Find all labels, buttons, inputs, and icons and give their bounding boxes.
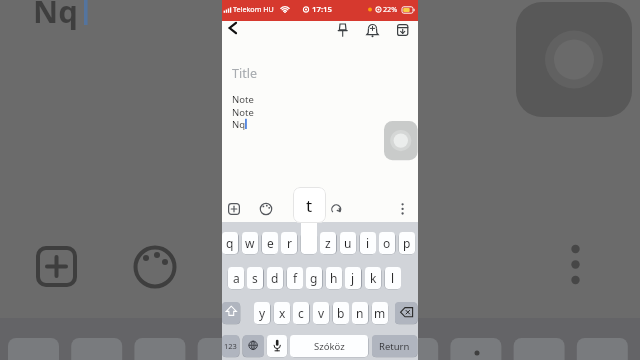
staticText: Return [379, 340, 410, 353]
button[interactable]: j [345, 267, 361, 289]
button[interactable] [364, 22, 381, 39]
button[interactable]: x [274, 302, 290, 324]
staticText: o [383, 235, 391, 251]
button[interactable]: k [365, 267, 381, 289]
button[interactable] [327, 200, 345, 218]
staticText: v [318, 305, 325, 321]
staticText: w [245, 235, 255, 251]
staticText: s [252, 270, 258, 286]
button[interactable]: y [254, 302, 270, 324]
staticText: x [279, 305, 286, 321]
button[interactable] [225, 200, 243, 218]
button[interactable] [267, 335, 287, 357]
button[interactable]: 123 [222, 335, 239, 357]
staticText: Note [232, 106, 254, 119]
staticText: Szóköz [314, 340, 345, 353]
button[interactable]: d [267, 267, 283, 289]
button[interactable] [394, 200, 411, 218]
staticText: a [233, 270, 240, 286]
staticText: e [267, 235, 274, 251]
staticText: c [298, 305, 304, 321]
button[interactable] [384, 121, 418, 160]
button[interactable]: w [242, 232, 258, 254]
button[interactable] [394, 22, 411, 39]
staticText: y [259, 305, 266, 321]
staticText: b [337, 305, 345, 321]
staticText: l [391, 270, 395, 286]
staticText: Title [232, 65, 257, 82]
button[interactable]: a [228, 267, 244, 289]
staticText: 123 [224, 341, 237, 351]
staticText: Nq [232, 118, 246, 131]
staticText: q [226, 235, 234, 251]
button[interactable]: Return [372, 335, 417, 357]
staticText: u [344, 235, 352, 251]
button[interactable] [225, 19, 243, 37]
staticText: i [366, 235, 370, 251]
staticText: m [374, 305, 386, 321]
button[interactable] [243, 335, 264, 357]
button[interactable]: h [326, 267, 342, 289]
button[interactable]: e [262, 232, 278, 254]
staticText: k [370, 270, 377, 286]
button[interactable] [334, 22, 351, 39]
staticText: t [306, 194, 313, 217]
button[interactable]: q [222, 232, 238, 254]
staticText: j [351, 270, 355, 286]
button[interactable]: i [360, 232, 376, 254]
button[interactable]: n [352, 302, 368, 324]
button[interactable]: f [287, 267, 303, 289]
button[interactable]: z [320, 232, 336, 254]
button[interactable]: u [340, 232, 356, 254]
staticText: r [287, 235, 292, 251]
button[interactable]: o [379, 232, 395, 254]
button[interactable]: c [293, 302, 309, 324]
button[interactable]: b [333, 302, 349, 324]
button[interactable]: r [281, 232, 297, 254]
button[interactable]: Szóköz [290, 335, 368, 357]
staticText: 17:15 [312, 4, 332, 15]
button[interactable] [222, 302, 240, 324]
staticText: g [310, 270, 318, 286]
staticText: Nq [33, 0, 78, 32]
button[interactable]: m [372, 302, 388, 324]
staticText: h [330, 270, 338, 286]
staticText: z [325, 235, 331, 251]
button[interactable]: s [247, 267, 263, 289]
staticText: f [293, 270, 298, 286]
button[interactable]: l [385, 267, 401, 289]
button[interactable] [395, 302, 417, 324]
staticText: d [271, 270, 279, 286]
staticText: p [403, 235, 411, 251]
button[interactable] [301, 232, 317, 254]
staticText: Telekom HU [233, 4, 274, 14]
button[interactable] [257, 200, 275, 218]
staticText: n [356, 305, 364, 321]
button[interactable]: v [313, 302, 329, 324]
button[interactable]: p [399, 232, 415, 254]
staticText: 22% [383, 4, 398, 14]
button[interactable]: g [306, 267, 322, 289]
staticText: Note [232, 93, 254, 106]
